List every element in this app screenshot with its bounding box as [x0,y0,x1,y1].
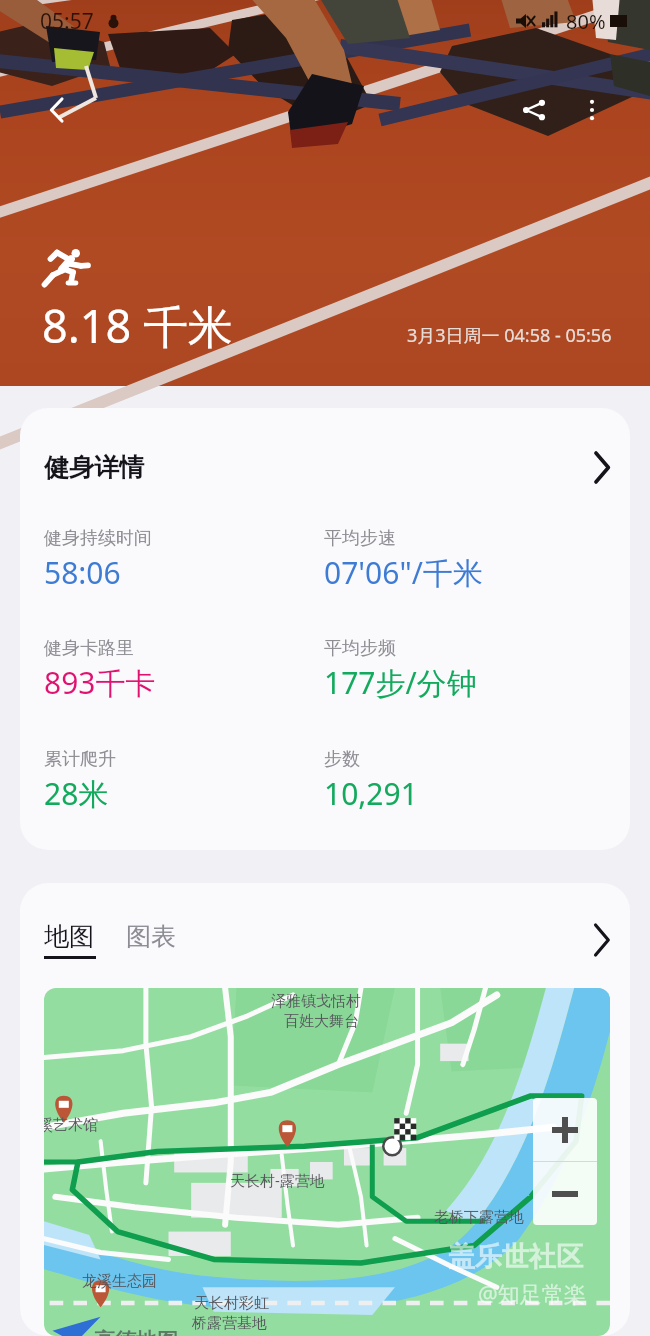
staticText: 健身持续时间 [44,527,152,550]
staticText: 3月3日周一 04:58 - 05:56 [407,323,612,348]
staticText: 桥露营基地 [192,1314,267,1333]
staticText: 07'06"/千米 [324,552,483,593]
staticText: 地图 [44,921,94,952]
staticText: 80% [566,8,606,35]
staticText: 平均步速 [324,527,396,550]
staticText: 893千卡 [44,662,156,703]
staticText: 盖乐世社区 [448,1240,583,1274]
staticText: 百姓大舞台 [284,1012,359,1031]
button[interactable]: 地图 [44,921,96,959]
button[interactable]: Zoom in [533,1098,597,1161]
button[interactable]: Back [36,88,80,132]
staticText: 28米 [44,773,109,814]
staticText: 10,291 [324,773,418,814]
button[interactable]: Zoom out [533,1162,597,1225]
button[interactable]: More options [570,88,614,132]
staticText: 177步/分钟 [324,662,477,703]
staticText: 05:57 [40,7,94,36]
staticText: 平均步频 [324,637,396,660]
staticText: 溪艺术馆 [44,1116,98,1135]
staticText: 58:06 [44,552,121,593]
staticText: 高德地图 [94,1328,178,1336]
button[interactable]: Share [512,88,556,132]
staticText: 天长村彩虹 [194,1294,269,1313]
staticText: 步数 [324,748,360,771]
staticText: 8.18 千米 [42,295,233,356]
staticText: 天长村-露营地 [230,1170,325,1190]
staticText: @知足常楽 [478,1278,586,1308]
button[interactable]: 图表 [126,925,176,956]
staticText: 健身卡路里 [44,637,134,660]
staticText: 泽雅镇戈恬村 [271,992,361,1011]
staticText: 图表 [126,921,176,952]
staticText: 龙溪生态园 [82,1272,157,1291]
staticText: 累计爬升 [44,748,116,771]
button[interactable]: Open map [593,925,610,955]
staticText: 老桥下露营地 [434,1208,524,1227]
button[interactable]: 健身详情 [20,408,630,850]
staticText: 健身详情 [44,452,144,483]
